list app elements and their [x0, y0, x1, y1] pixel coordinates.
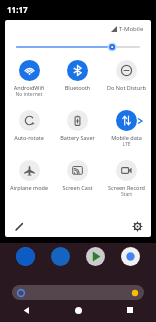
staticText: Airplane mode	[6, 184, 52, 191]
staticText: Bluetooth	[54, 84, 101, 91]
button[interactable]: Back	[0, 298, 52, 322]
staticText: LTE	[102, 141, 151, 148]
button[interactable]: App	[16, 247, 35, 266]
staticText: T-Mobile	[119, 25, 144, 33]
staticText: Mobile data	[103, 134, 150, 141]
button[interactable]: App	[86, 247, 105, 266]
button[interactable]: Search	[12, 285, 144, 300]
button[interactable]: Edit tiles	[11, 218, 27, 234]
staticText: Auto-rotate	[6, 134, 52, 141]
button[interactable]: Battery Saver	[53, 110, 102, 160]
staticText: Battery Saver	[54, 134, 101, 141]
button[interactable]: App	[121, 247, 140, 266]
button[interactable]: Recents	[104, 298, 156, 322]
button[interactable]: Home	[52, 298, 104, 322]
staticText: Screen Record	[103, 184, 150, 191]
button[interactable]: Brightness	[5, 37, 151, 57]
staticText: 11:17	[7, 4, 28, 15]
button[interactable]: Airplane mode	[5, 160, 53, 210]
button[interactable]: Do Not Disturb	[102, 60, 151, 110]
staticText: AndroidWifi	[6, 84, 52, 91]
button[interactable]: App	[51, 247, 70, 266]
button[interactable]: Settings	[129, 218, 145, 234]
staticText: Screen Cast	[54, 184, 101, 191]
staticText: Do Not Disturb	[103, 84, 150, 91]
button[interactable]: Auto-rotate	[5, 110, 53, 160]
staticText: Start	[102, 191, 151, 198]
button[interactable]: Mobile data	[102, 110, 151, 160]
button[interactable]: Screen Cast	[53, 160, 102, 210]
button[interactable]: AndroidWifi	[5, 60, 53, 110]
button[interactable]: Screen Record	[102, 160, 151, 210]
staticText: No internet	[5, 91, 53, 98]
button[interactable]: Bluetooth	[53, 60, 102, 110]
